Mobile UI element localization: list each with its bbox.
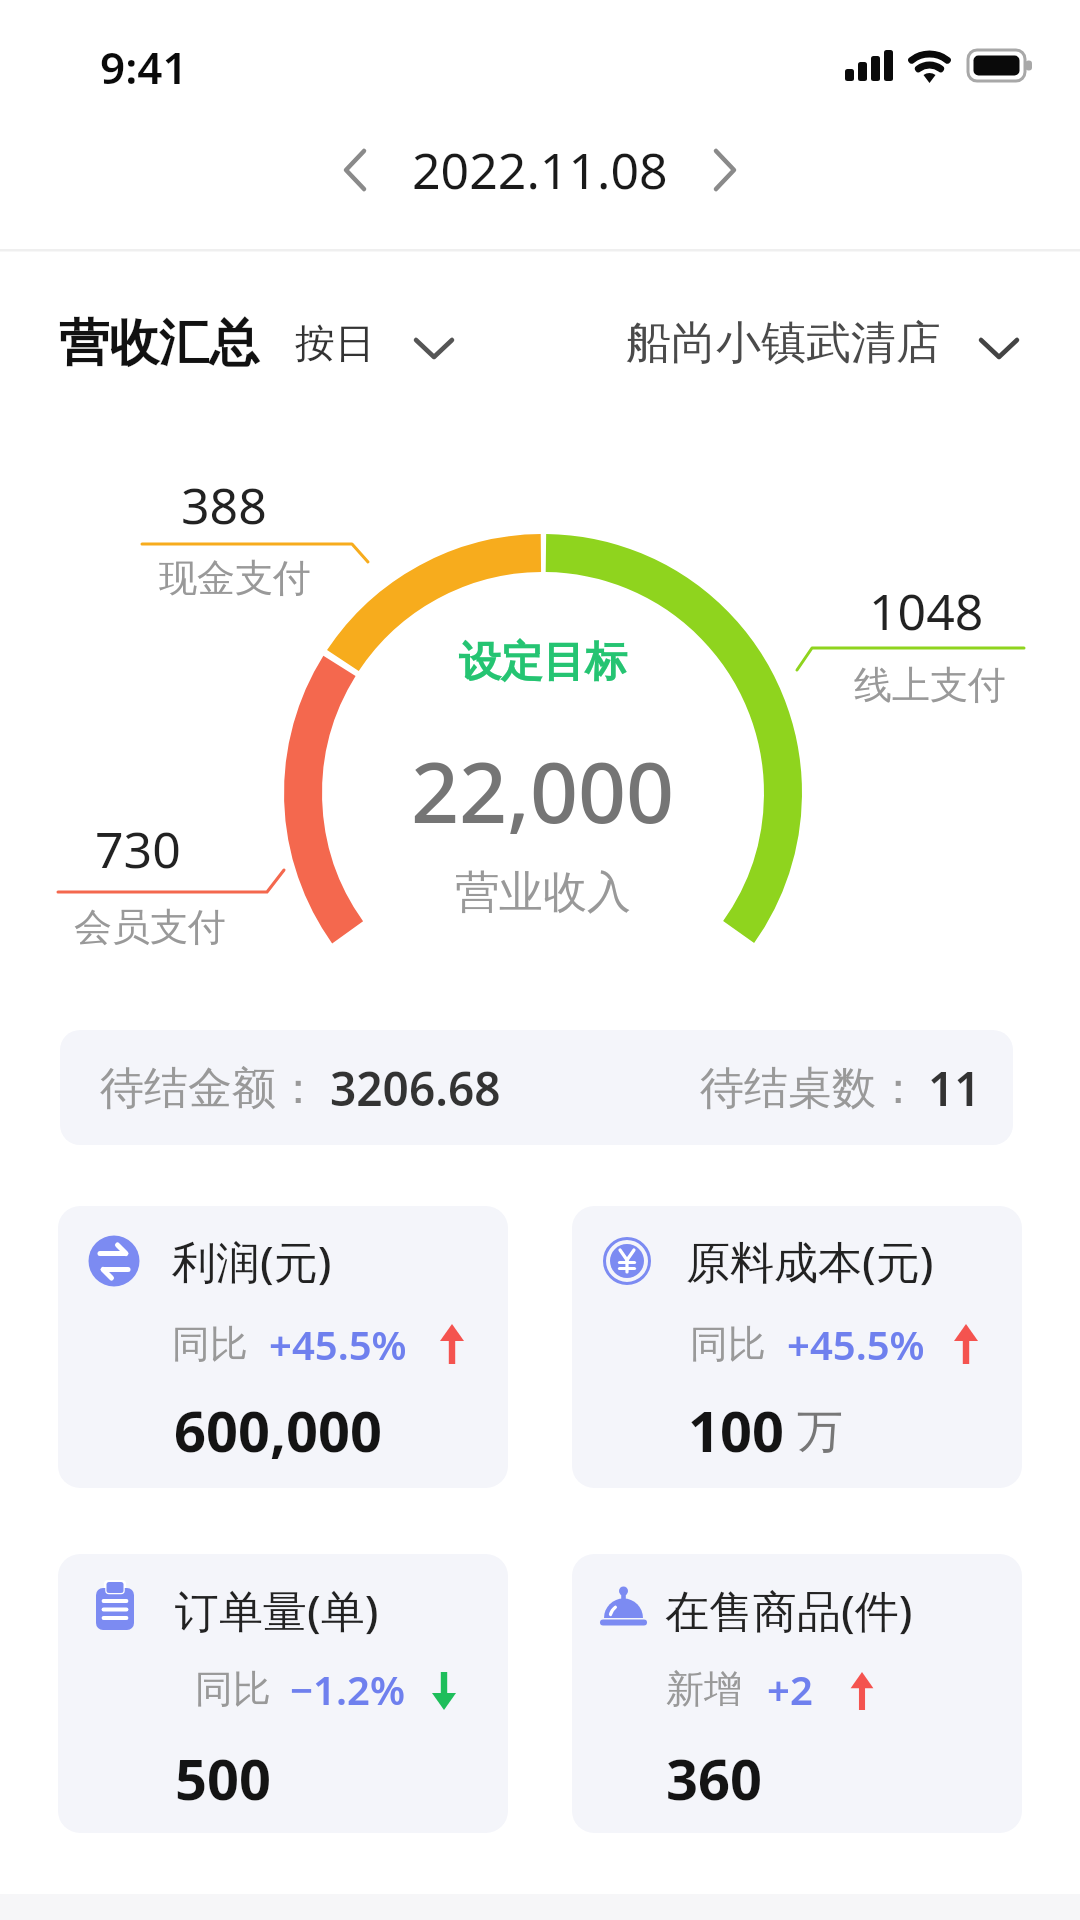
- staticText: +45.5%: [787, 1317, 925, 1371]
- button[interactable]: [572, 1554, 1022, 1833]
- staticText: 在售商品(件): [665, 1580, 913, 1640]
- staticText: 新增: [666, 1665, 742, 1713]
- button[interactable]: [572, 1206, 1022, 1488]
- staticText: 500: [175, 1740, 272, 1816]
- button[interactable]: [58, 1206, 508, 1488]
- button[interactable]: [58, 1554, 508, 1833]
- button[interactable]: [60, 1030, 1013, 1145]
- staticText: +2: [767, 1662, 813, 1716]
- button[interactable]: [285, 315, 465, 375]
- staticText: 万: [797, 1403, 843, 1461]
- staticText: 3206.68: [330, 1057, 501, 1120]
- staticText: 利润(元): [172, 1231, 332, 1291]
- staticText: 22,000: [411, 733, 675, 847]
- button[interactable]: [690, 140, 760, 200]
- staticText: 2022.11.08: [412, 136, 668, 204]
- staticText: +45.5%: [269, 1317, 407, 1371]
- staticText: 现金支付: [159, 554, 311, 602]
- staticText: 9:41: [100, 37, 188, 97]
- staticText: 360: [666, 1740, 763, 1816]
- staticText: 同比: [690, 1320, 766, 1368]
- staticText: 营收汇总: [59, 312, 259, 375]
- staticText: 营业收入: [455, 865, 631, 920]
- staticText: 按日: [295, 318, 375, 368]
- staticText: 船尚小镇武清店: [626, 315, 941, 372]
- button[interactable]: [320, 140, 390, 200]
- staticText: 100: [688, 1392, 785, 1468]
- staticText: 1048: [869, 577, 984, 645]
- staticText: −1.2%: [290, 1662, 405, 1716]
- staticText: 11: [928, 1057, 981, 1120]
- staticText: 会员支付: [74, 903, 226, 951]
- staticText: 待结金额：: [100, 1061, 320, 1116]
- staticText: 同比: [195, 1665, 271, 1713]
- staticText: 线上支付: [854, 661, 1006, 709]
- staticText: 同比: [172, 1320, 248, 1368]
- staticText: 730: [95, 815, 181, 883]
- staticText: 设定目标: [459, 636, 627, 689]
- staticText: 待结桌数：: [700, 1061, 920, 1116]
- staticText: 原料成本(元): [686, 1231, 934, 1291]
- staticText: 订单量(单): [175, 1580, 379, 1640]
- staticText: 600,000: [174, 1392, 383, 1468]
- button[interactable]: [615, 315, 1035, 375]
- staticText: 388: [181, 471, 267, 539]
